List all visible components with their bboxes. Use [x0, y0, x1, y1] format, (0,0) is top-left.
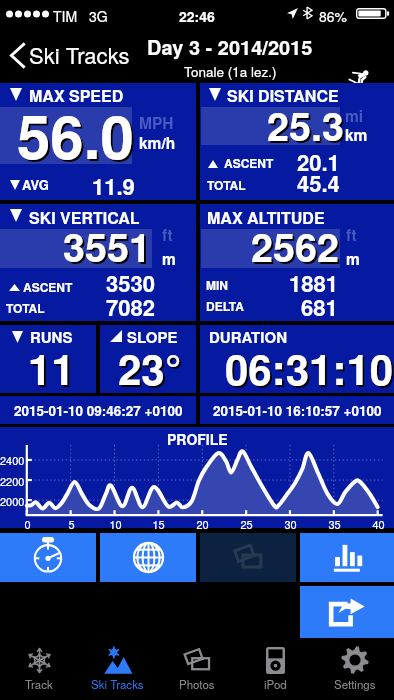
staticText: TOTAL [207, 176, 246, 193]
button[interactable]: iPod [236, 638, 315, 700]
staticText: 2200 [0, 473, 25, 489]
staticText: m [346, 248, 360, 270]
staticText: 15 [152, 516, 165, 532]
staticText: 23° [118, 338, 182, 398]
staticText: Ski Tracks [91, 676, 144, 692]
staticText: Settings [334, 676, 376, 692]
staticText: 2562 [251, 218, 339, 275]
staticText: TIM [53, 6, 78, 26]
staticText: 11 [30, 340, 77, 400]
staticText: TOTAL [6, 299, 45, 316]
staticText: 23° [120, 340, 184, 400]
staticText: 20.1 [297, 146, 340, 178]
staticText: 06:31:10 [227, 340, 394, 400]
staticText: 25.3 [267, 97, 344, 154]
staticText: MAX ALTITUDE [207, 206, 325, 229]
staticText: SKI DISTANCE [227, 84, 339, 107]
staticText: 10 [109, 516, 122, 532]
staticText: 3G [89, 6, 108, 26]
button[interactable]: Ski Tracks [6, 35, 134, 75]
staticText: RUNS [30, 326, 73, 347]
staticText: Day 3 - 2014/2015 [147, 32, 313, 61]
staticText: 45.4 [297, 167, 340, 199]
button[interactable]: Track [0, 638, 78, 700]
staticText: mi [345, 105, 364, 127]
staticText: 56.0 [17, 91, 134, 177]
staticText: Tonale (1a lez.) [184, 62, 277, 81]
staticText: 40 [372, 516, 385, 532]
staticText: 86% [319, 6, 348, 26]
staticText: Photos [179, 676, 215, 692]
staticText: 3530 [106, 267, 155, 299]
staticText: 25.3 [269, 99, 346, 156]
staticText: 11 [28, 338, 75, 398]
staticText: 35 [328, 516, 341, 532]
staticText: km/h [139, 132, 176, 154]
staticText: ASCENT [224, 154, 274, 171]
button[interactable]: Map [100, 533, 196, 582]
staticText: SKI VERTICAL [29, 206, 140, 229]
staticText: Track [25, 676, 53, 692]
staticText: 2562 [253, 220, 341, 277]
staticText: km [345, 124, 368, 146]
staticText: 2015-01-10 09:46:27 +0100 [14, 401, 183, 420]
staticText: MPH [139, 112, 174, 134]
staticText: 56.0 [19, 93, 136, 179]
staticText: 2400 [0, 452, 25, 468]
button[interactable]: Settings [315, 638, 394, 700]
staticText: 30 [284, 516, 297, 532]
button[interactable]: Timeline [0, 533, 96, 582]
staticText: 2000 [0, 493, 25, 509]
staticText: 5 [68, 516, 75, 532]
staticText: 0 [24, 516, 31, 532]
button[interactable]: Skier [348, 68, 370, 90]
staticText: MAX SPEED [29, 84, 124, 107]
staticText: 2015-01-10 16:10:57 +0100 [213, 401, 382, 420]
staticText: 7082 [106, 291, 155, 323]
staticText: 25 [240, 516, 253, 532]
staticText: 11.9 [92, 170, 135, 202]
staticText: ft [162, 224, 173, 246]
staticText: ft [346, 224, 357, 246]
staticText: Ski Tracks [29, 39, 130, 71]
staticText: ASCENT [23, 278, 73, 295]
staticText: 06:31:10 [225, 338, 394, 398]
staticText: DURATION [209, 326, 287, 347]
staticText: iPod [264, 676, 287, 692]
staticText: DELTA [206, 297, 244, 314]
staticText: PROFILE [167, 429, 228, 449]
button[interactable]: Statistics [300, 533, 394, 582]
button[interactable]: Photos [200, 533, 296, 582]
staticText: 681 [301, 291, 338, 323]
staticText: 3551 [65, 220, 153, 277]
staticText: 1881 [289, 267, 338, 299]
staticText: 20 [196, 516, 209, 532]
button[interactable]: Share [300, 586, 394, 638]
button[interactable]: Photos [157, 638, 236, 700]
button[interactable]: Ski Tracks [78, 638, 157, 700]
staticText: m [162, 248, 176, 270]
staticText: 3551 [63, 218, 151, 275]
staticText: AVG [22, 175, 49, 194]
staticText: SLOPE [127, 326, 178, 347]
staticText: MIN [206, 276, 228, 293]
staticText: 22:46 [179, 6, 215, 26]
